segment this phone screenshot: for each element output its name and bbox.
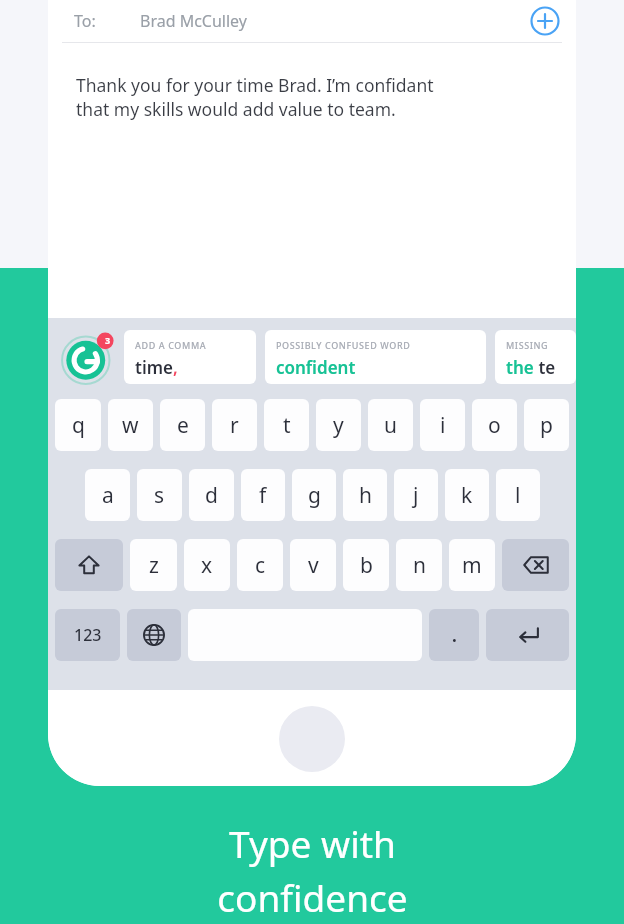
button[interactable]: j bbox=[394, 469, 438, 521]
button[interactable]: c bbox=[237, 539, 283, 591]
staticText: u bbox=[384, 411, 397, 440]
button[interactable]: m bbox=[449, 539, 495, 591]
button[interactable]: POSSIBLY CONFUSED WORD bbox=[265, 330, 486, 384]
button[interactable]: u bbox=[368, 399, 413, 451]
staticText: z bbox=[149, 551, 159, 580]
staticText: y bbox=[333, 411, 344, 440]
staticText: s bbox=[154, 481, 165, 510]
staticText: q bbox=[72, 411, 85, 440]
button[interactable]: . bbox=[429, 609, 479, 661]
button[interactable]: Backspace bbox=[502, 539, 569, 591]
staticText: c bbox=[255, 551, 266, 580]
button[interactable]: To: bbox=[48, 0, 576, 42]
staticText: time bbox=[135, 356, 173, 379]
button[interactable]: a bbox=[85, 469, 130, 521]
button[interactable]: Switch keyboard bbox=[127, 609, 181, 661]
button[interactable]: Home bbox=[279, 706, 345, 772]
staticText: l bbox=[515, 481, 521, 510]
button[interactable]: s bbox=[137, 469, 182, 521]
button[interactable]: Add recipient bbox=[528, 4, 562, 38]
staticText: o bbox=[488, 411, 501, 440]
staticText: 3 bbox=[105, 334, 111, 346]
button[interactable]: x bbox=[184, 539, 230, 591]
button[interactable]: k bbox=[445, 469, 489, 521]
button[interactable]: t bbox=[264, 399, 309, 451]
button[interactable]: n bbox=[396, 539, 442, 591]
staticText: the bbox=[506, 356, 534, 379]
staticText: MISSING ARTICLE bbox=[506, 339, 576, 351]
button[interactable]: z bbox=[130, 539, 177, 591]
button[interactable]: w bbox=[108, 399, 153, 451]
staticText: . bbox=[452, 624, 457, 647]
button[interactable]: g bbox=[292, 469, 336, 521]
staticText: b bbox=[360, 551, 373, 580]
staticText: p bbox=[540, 411, 553, 440]
staticText: Brad McCulley bbox=[140, 10, 247, 32]
button[interactable]: h bbox=[343, 469, 387, 521]
staticText: n bbox=[413, 551, 426, 580]
staticText: a bbox=[102, 481, 114, 510]
button[interactable]: b bbox=[343, 539, 389, 591]
staticText: confidence bbox=[217, 872, 408, 922]
button[interactable]: l bbox=[496, 469, 540, 521]
staticText: confident bbox=[276, 356, 356, 379]
staticText: w bbox=[122, 411, 139, 440]
staticText: e bbox=[177, 411, 189, 440]
staticText: r bbox=[230, 411, 239, 440]
staticText: POSSIBLY CONFUSED WORD bbox=[276, 339, 411, 351]
staticText: h bbox=[359, 481, 372, 510]
staticText: k bbox=[461, 481, 473, 510]
staticText: that my skills would add value to team. bbox=[76, 97, 396, 121]
button[interactable]: p bbox=[524, 399, 569, 451]
button[interactable]: y bbox=[316, 399, 361, 451]
button[interactable]: Return bbox=[486, 609, 569, 661]
button[interactable]: Grammarly bbox=[62, 330, 116, 384]
staticText: Thank you for your time Brad. I’m confid… bbox=[76, 73, 434, 97]
button[interactable]: e bbox=[160, 399, 205, 451]
staticText: f bbox=[259, 481, 267, 510]
staticText: , bbox=[173, 356, 178, 379]
staticText: Type with bbox=[229, 818, 396, 868]
button[interactable]: o bbox=[472, 399, 517, 451]
staticText: j bbox=[413, 481, 419, 510]
button[interactable]: v bbox=[290, 539, 336, 591]
button[interactable]: r bbox=[212, 399, 257, 451]
staticText: To: bbox=[74, 10, 96, 32]
button[interactable]: MISSING ARTICLE bbox=[495, 330, 576, 384]
button[interactable]: ADD A COMMA bbox=[124, 330, 256, 384]
button[interactable]: i bbox=[420, 399, 465, 451]
staticText: d bbox=[205, 481, 218, 510]
button[interactable]: Shift bbox=[55, 539, 123, 591]
staticText: 123 bbox=[74, 624, 102, 646]
staticText: i bbox=[440, 411, 446, 440]
button[interactable]: q bbox=[55, 399, 101, 451]
staticText: x bbox=[201, 551, 213, 580]
staticText: ADD A COMMA bbox=[135, 339, 207, 351]
button[interactable]: f bbox=[241, 469, 285, 521]
button[interactable]: d bbox=[189, 469, 234, 521]
staticText: v bbox=[308, 551, 319, 580]
staticText: t bbox=[283, 411, 291, 440]
staticText: g bbox=[308, 481, 321, 510]
button[interactable]: 123 bbox=[55, 609, 120, 661]
staticText: m bbox=[462, 551, 482, 580]
staticText: te bbox=[534, 356, 556, 379]
